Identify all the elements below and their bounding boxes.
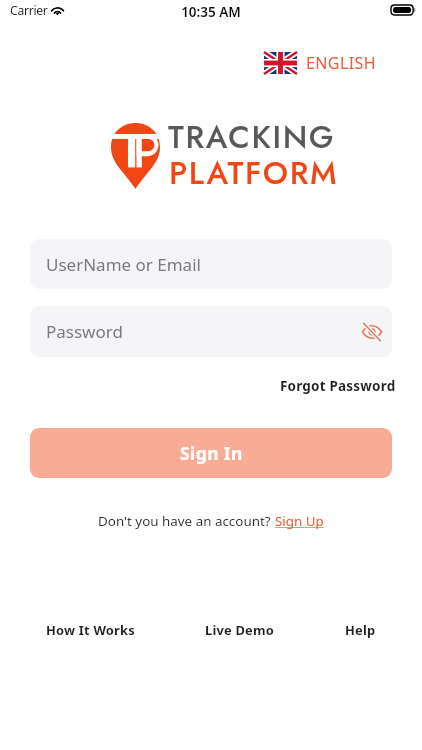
staticText: Carrier <box>10 2 48 19</box>
button[interactable]: Show password <box>355 315 389 349</box>
staticText: Forgot Password <box>280 377 396 395</box>
button[interactable]: ENGLISH <box>260 48 384 78</box>
button[interactable]: Live Demo <box>205 621 275 639</box>
staticText: Sign In <box>180 441 243 465</box>
button[interactable]: Help <box>345 621 376 639</box>
staticText: Password <box>46 320 123 343</box>
staticText: 10:35 AM <box>0 3 422 21</box>
button[interactable]: Sign In <box>30 428 392 478</box>
staticText: PLATFORM <box>169 150 339 196</box>
button[interactable]: Sign Up <box>275 512 324 530</box>
staticText: UserName or Email <box>46 253 201 276</box>
button[interactable]: Password <box>30 306 392 357</box>
button[interactable]: UserName or Email <box>30 239 392 289</box>
staticText: Don't you have an account? <box>98 512 275 530</box>
button[interactable]: How It Works <box>46 621 135 639</box>
staticText: ENGLISH <box>306 52 376 74</box>
staticText: TRACKING <box>168 114 336 160</box>
button[interactable]: Forgot Password <box>274 373 402 399</box>
